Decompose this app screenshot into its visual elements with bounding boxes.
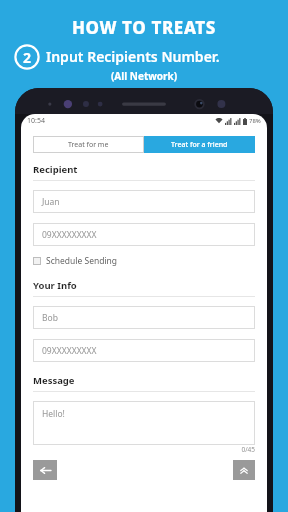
staticText: Hello! (42, 408, 65, 420)
button[interactable]: Schedule Sending (33, 253, 118, 269)
staticText: Input Recipients Number. (46, 47, 220, 66)
staticText: 10:54 (27, 116, 45, 126)
staticText: Treat for a friend (171, 140, 228, 150)
staticText: 2 (23, 48, 32, 67)
button[interactable]: 09XXXXXXXXX (33, 339, 255, 362)
staticText: HOW TO TREATS (0, 16, 288, 39)
button[interactable]: Treat for me (33, 136, 144, 153)
staticText: Bob (42, 312, 58, 324)
button[interactable]: Juan (33, 190, 255, 213)
staticText: 78% (249, 117, 261, 125)
staticText: Recipient (33, 163, 78, 176)
button[interactable]: Bob (33, 306, 255, 329)
staticText: Schedule Sending (46, 255, 118, 267)
staticText: (All Network) (0, 69, 288, 83)
staticText: 09XXXXXXXXX (42, 229, 97, 241)
staticText: Message (33, 374, 75, 387)
button[interactable]: Treat for a friend (144, 136, 255, 153)
button[interactable]: Hello! (33, 401, 255, 445)
button[interactable]: Scroll to top (233, 460, 255, 480)
button[interactable]: Back (33, 460, 57, 480)
staticText: Juan (42, 196, 60, 208)
staticText: Treat for me (68, 140, 109, 150)
button[interactable]: 09XXXXXXXXX (33, 223, 255, 246)
staticText: 09XXXXXXXXX (42, 345, 97, 357)
staticText: 0/45 (33, 445, 255, 454)
staticText: Your Info (33, 279, 77, 292)
